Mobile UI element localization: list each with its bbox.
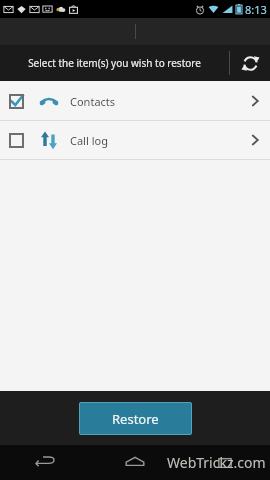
button[interactable]: Back — [0, 445, 90, 480]
staticText: WebTrickz.com — [167, 453, 266, 472]
button[interactable]: Home — [90, 445, 180, 480]
button[interactable]: Refresh — [230, 45, 270, 81]
button[interactable]: Restore — [79, 402, 192, 435]
button[interactable]: Unchecked — [9, 133, 24, 148]
staticText: 8:13 — [245, 2, 267, 17]
staticText: Call log — [70, 133, 108, 148]
button[interactable]: Checked — [9, 94, 24, 109]
button[interactable]: Recent apps — [180, 445, 270, 480]
staticText: Select the item(s) you wish to restore — [28, 56, 201, 70]
staticText: Contacts — [70, 94, 116, 109]
button[interactable]: Checked — [0, 82, 270, 120]
staticText: Restore — [112, 410, 159, 428]
button[interactable]: Unchecked — [0, 121, 270, 159]
